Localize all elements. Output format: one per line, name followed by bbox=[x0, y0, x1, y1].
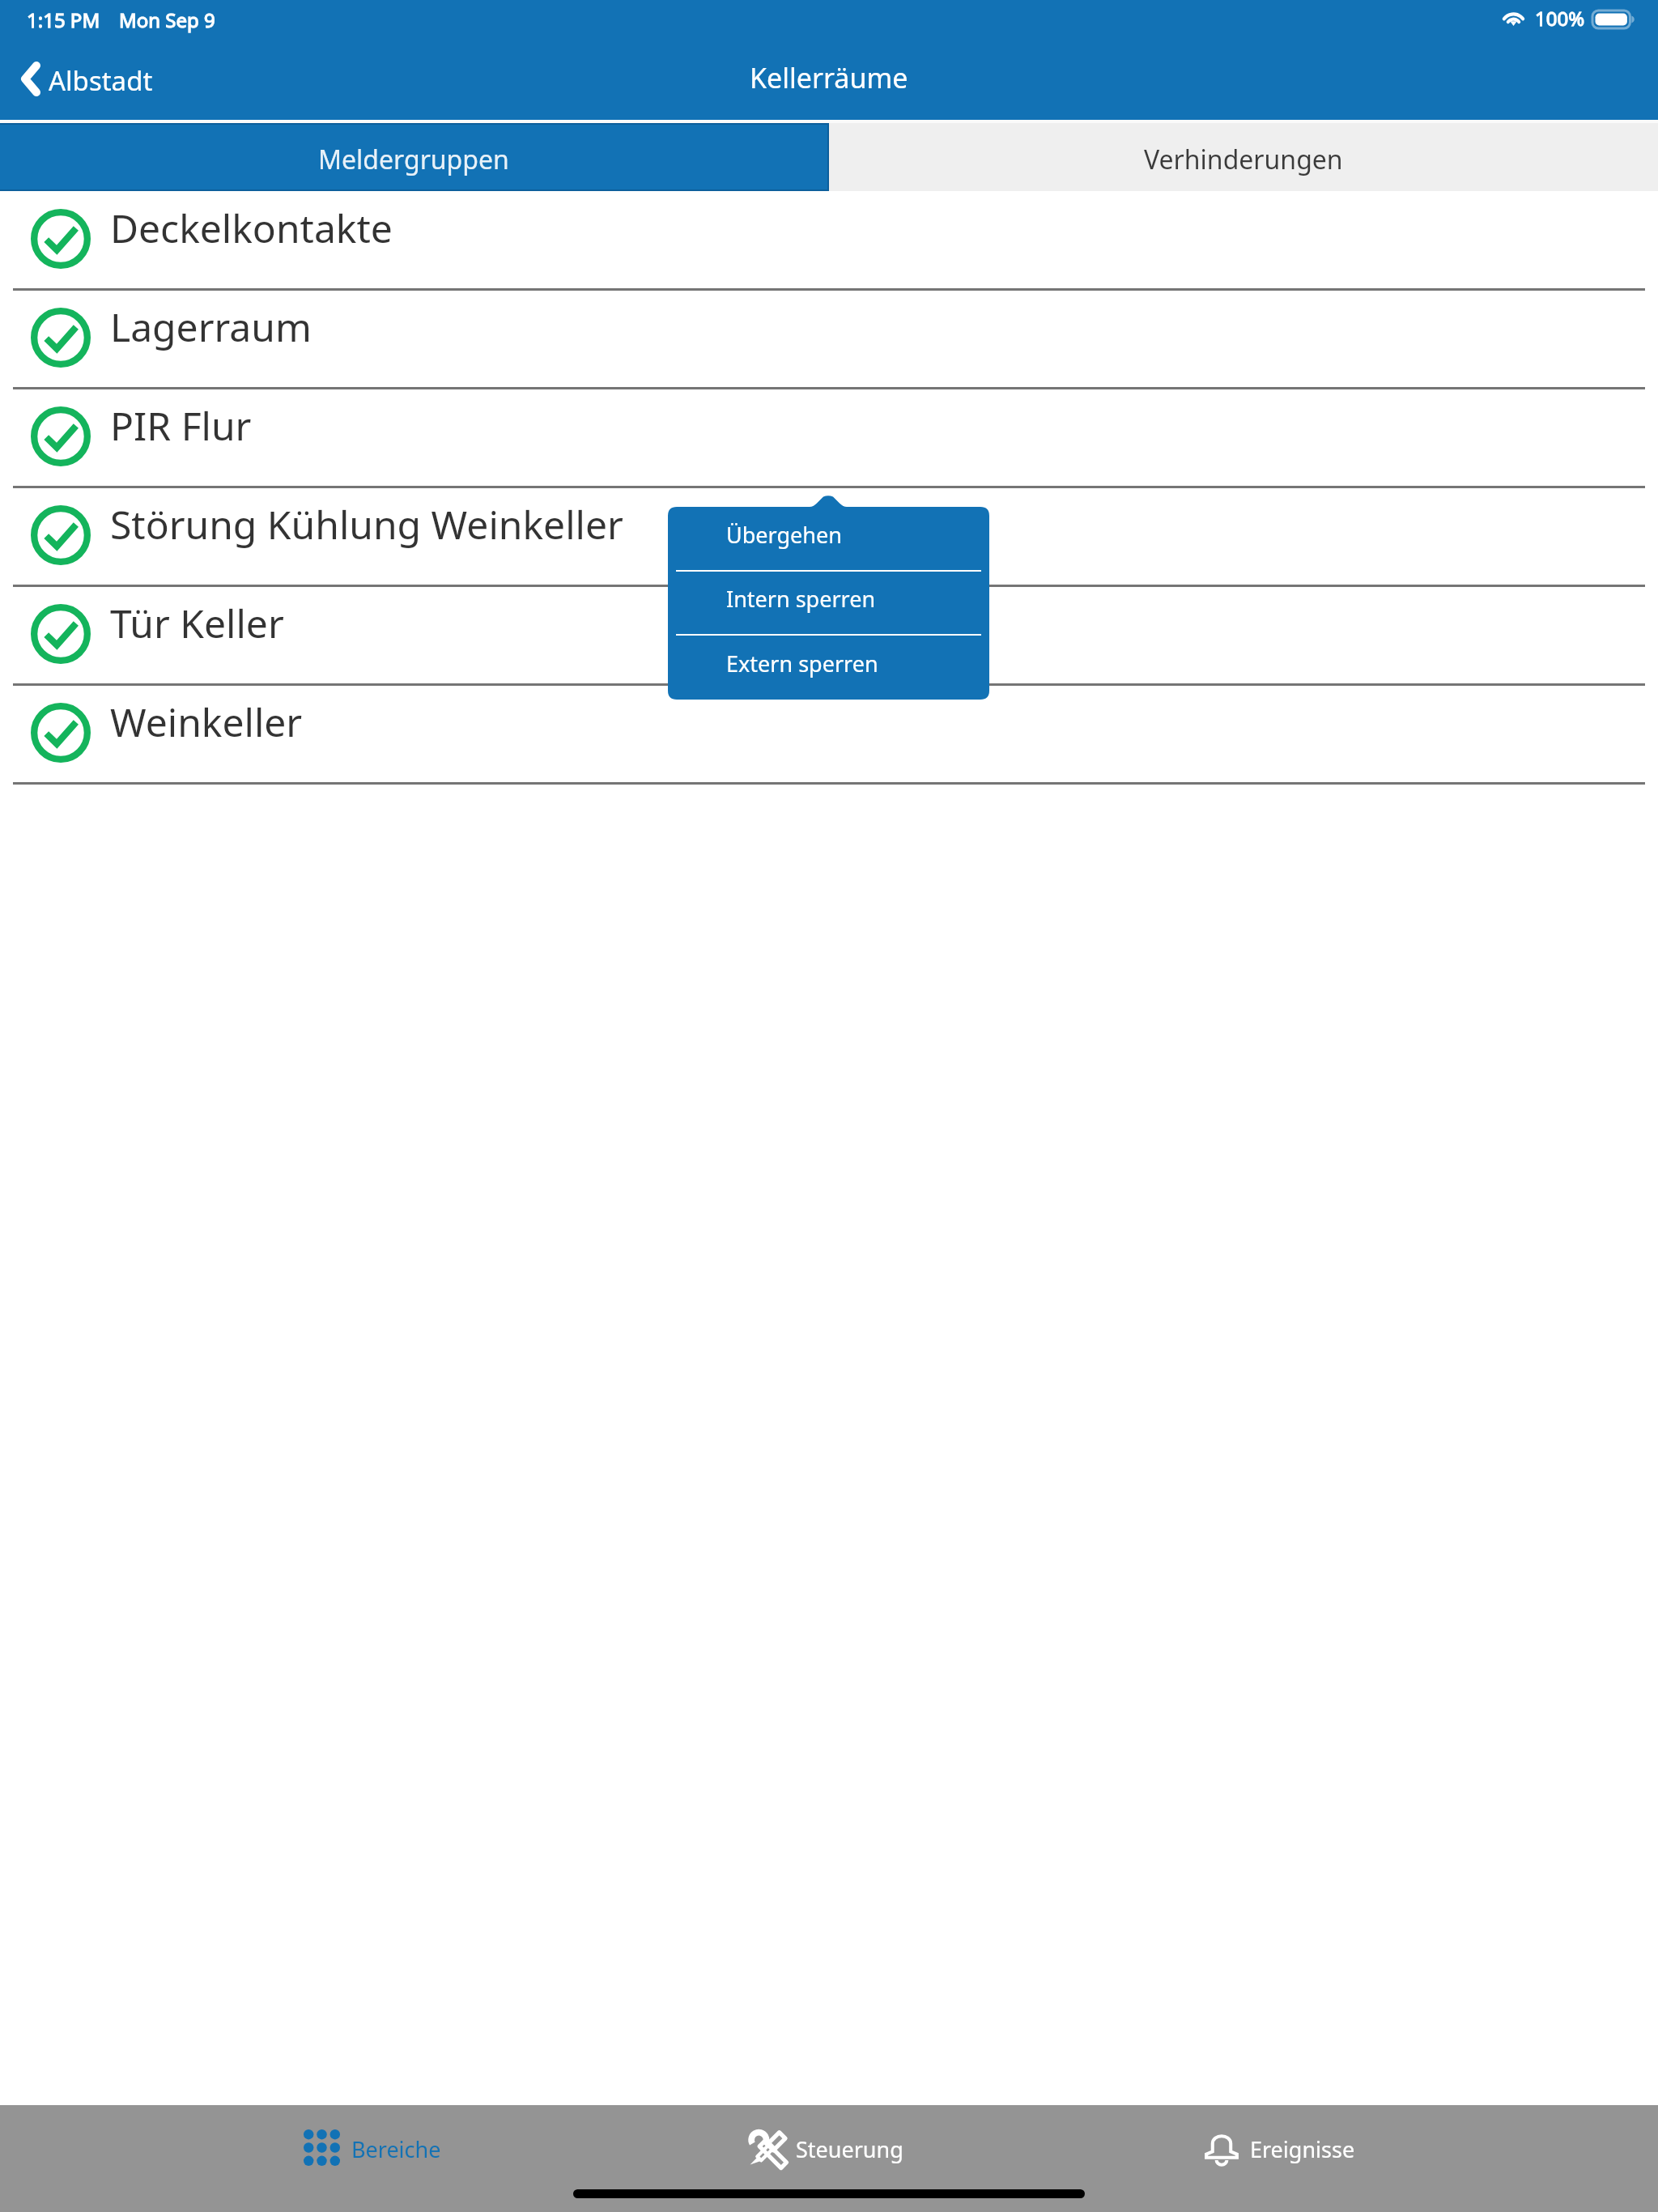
button[interactable]: PIR Flur bbox=[0, 389, 1658, 487]
other: Ereignisse bbox=[1204, 2129, 1239, 2165]
button[interactable]: Extern sperren bbox=[668, 635, 989, 700]
button[interactable]: Übergehen bbox=[668, 507, 989, 571]
button[interactable]: Bereiche bbox=[259, 2105, 486, 2212]
staticText: Meldergruppen bbox=[318, 142, 509, 177]
staticText: Extern sperren bbox=[726, 649, 878, 678]
staticText: Lagerraum bbox=[110, 300, 312, 353]
staticText: PIR Flur bbox=[110, 399, 252, 452]
button[interactable]: Tür Keller bbox=[0, 586, 1658, 685]
button[interactable]: Lagerraum bbox=[0, 290, 1658, 389]
button[interactable]: Back bbox=[21, 62, 153, 98]
staticText: Tür Keller bbox=[110, 597, 284, 649]
other: Back bbox=[21, 62, 40, 96]
button[interactable]: Störung Kühlung Weinkeller bbox=[0, 487, 1658, 586]
staticText: Kellerräume bbox=[750, 59, 908, 96]
staticText: Albstadt bbox=[49, 62, 153, 99]
staticText: Intern sperren bbox=[726, 584, 876, 614]
button[interactable]: Steuerung bbox=[712, 2105, 939, 2212]
other: Battery bbox=[1592, 11, 1634, 28]
staticText: 1:15 PM bbox=[27, 6, 100, 33]
staticText: Störung Kühlung Weinkeller bbox=[110, 498, 623, 551]
staticText: Ereignisse bbox=[1250, 2134, 1355, 2164]
staticText: Steuerung bbox=[796, 2134, 903, 2164]
button[interactable]: Intern sperren bbox=[668, 571, 989, 635]
staticText: 100% bbox=[1535, 5, 1585, 32]
other: Wi-Fi bbox=[1503, 11, 1524, 26]
other: Steuerung bbox=[748, 2129, 785, 2167]
staticText: Bereiche bbox=[351, 2134, 441, 2164]
button[interactable]: Verhinderungen bbox=[829, 123, 1658, 191]
staticText: Mon Sep 9 bbox=[119, 6, 215, 33]
button[interactable]: Weinkeller bbox=[0, 685, 1658, 784]
staticText: Deckelkontakte bbox=[110, 202, 393, 254]
button[interactable]: Ereignisse bbox=[1166, 2105, 1392, 2212]
button[interactable]: Meldergruppen bbox=[0, 125, 827, 189]
staticText: Weinkeller bbox=[110, 696, 303, 748]
staticText: Übergehen bbox=[726, 520, 842, 550]
staticText: Verhinderungen bbox=[1144, 142, 1343, 177]
button[interactable]: Deckelkontakte bbox=[0, 191, 1658, 290]
